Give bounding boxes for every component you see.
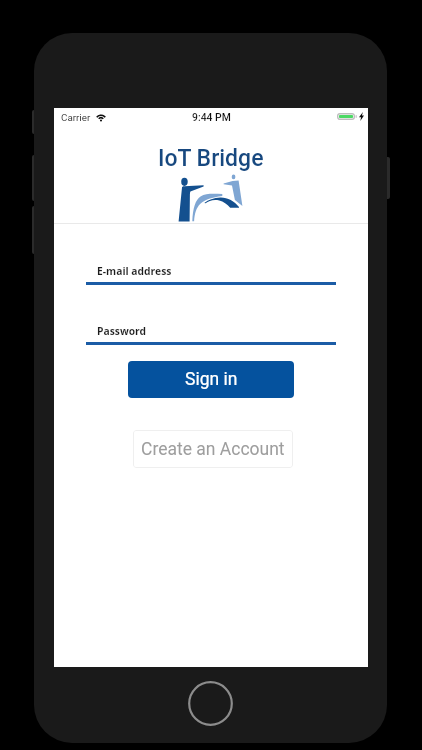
staticText: IoT Bridge (158, 145, 264, 172)
staticText: Carrier (61, 112, 91, 123)
button[interactable]: Password (86, 321, 336, 353)
staticText: E-mail address (97, 264, 172, 278)
staticText: Create an Account (141, 439, 285, 460)
button[interactable]: E-mail address (86, 261, 336, 293)
staticText: Password (97, 324, 147, 338)
staticText: 9:44 PM (192, 111, 231, 123)
button[interactable]: Create an Account (133, 430, 293, 468)
button[interactable]: Sign in (128, 361, 294, 398)
staticText: Sign in (185, 369, 238, 390)
